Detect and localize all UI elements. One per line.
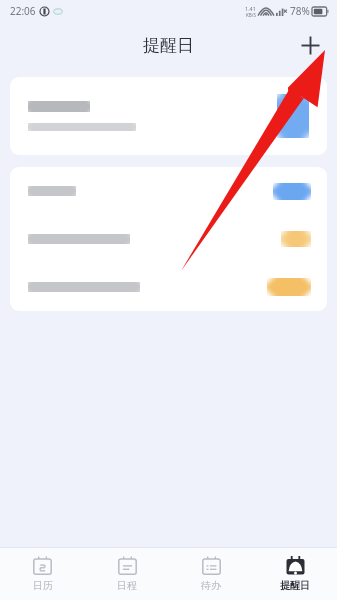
staticText: 22:06 [10,4,36,18]
staticText: 日程 [117,579,137,592]
staticText: 日历 [33,579,53,592]
staticText: 提醒日 [143,35,194,56]
button[interactable]: Add reminder [289,24,331,66]
button[interactable]: 提醒日 [253,548,337,600]
button[interactable] [10,215,327,263]
button[interactable] [10,167,327,215]
button[interactable] [10,77,327,155]
staticText: 提醒日 [280,579,310,592]
staticText: 78% [290,4,310,18]
staticText: 1.41 [245,5,256,12]
button[interactable] [10,263,327,311]
staticText: 待办 [201,579,221,592]
button[interactable]: 待办 [169,548,253,600]
button[interactable]: 日历 [0,548,85,600]
staticText: KB/S [246,12,256,18]
button[interactable]: 日程 [85,548,169,600]
